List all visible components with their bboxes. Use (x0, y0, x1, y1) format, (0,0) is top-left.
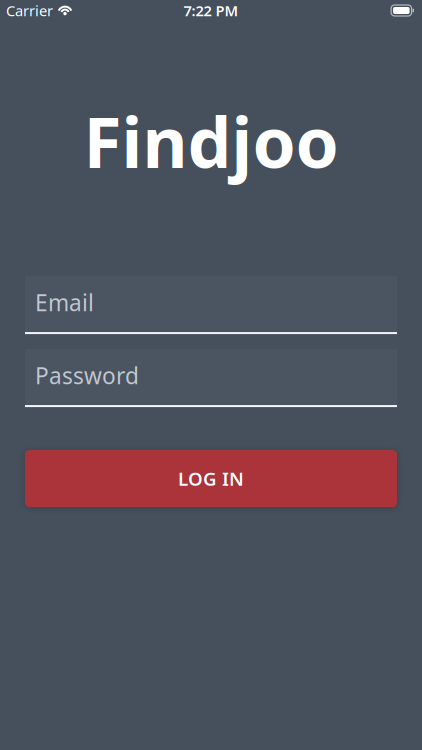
staticText: Findjoo (83, 95, 338, 187)
staticText: 7:22 PM (183, 1, 238, 20)
staticText: Email (35, 287, 94, 318)
button[interactable]: Email (25, 276, 397, 334)
button[interactable]: Password (25, 349, 397, 407)
staticText: Password (35, 360, 139, 391)
staticText: LOG IN (178, 466, 244, 491)
staticText: Carrier (6, 1, 53, 20)
button[interactable]: LOG IN (25, 450, 397, 507)
